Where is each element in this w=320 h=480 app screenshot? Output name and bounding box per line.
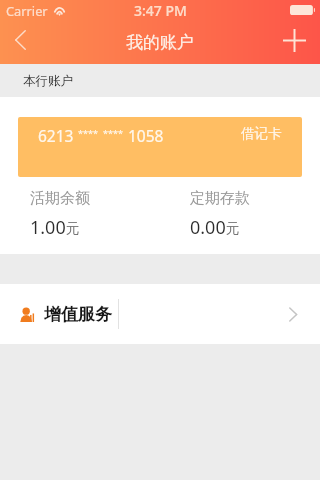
staticText: 1.00	[30, 215, 66, 240]
staticText: 定期存款	[190, 189, 250, 208]
button[interactable]: 6213	[18, 117, 302, 177]
staticText: 借记卡	[241, 125, 282, 142]
staticText: 活期余额	[30, 189, 90, 208]
staticText: Carrier	[6, 2, 48, 19]
staticText: ****	[78, 127, 98, 139]
button[interactable]: Add account	[268, 18, 320, 62]
staticText: 元	[66, 220, 80, 237]
staticText: 6213	[38, 125, 74, 146]
staticText: ****	[103, 127, 123, 139]
staticText: 我的账户	[126, 32, 194, 53]
staticText: 增值服务	[44, 304, 112, 325]
staticText: 本行账户	[23, 73, 73, 89]
staticText: 0.00	[190, 215, 226, 240]
staticText: 元	[226, 220, 240, 237]
button[interactable]: Back	[0, 18, 41, 62]
button[interactable]: 增值服务	[0, 284, 320, 344]
staticText: 3:47 PM	[134, 1, 187, 20]
staticText: 1058	[128, 125, 164, 146]
